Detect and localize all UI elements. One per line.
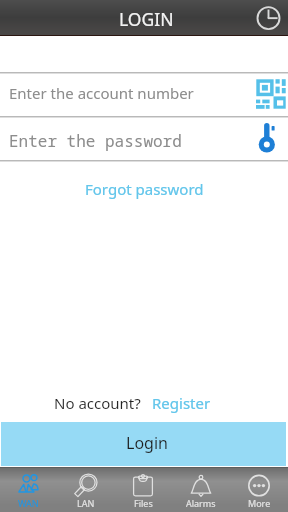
button[interactable]: WAN (0, 468, 57, 512)
button[interactable]: History (255, 4, 283, 32)
button[interactable]: Forgot password (75, 175, 214, 203)
staticText: Alarms (186, 497, 216, 509)
button[interactable]: Login (1, 422, 286, 466)
staticText: Login (126, 432, 168, 454)
staticText: Files (134, 497, 153, 509)
button[interactable]: LAN (57, 468, 114, 512)
staticText: Enter the password (9, 130, 182, 152)
button[interactable]: Enter the account number (0, 73, 288, 116)
button[interactable]: Show password (258, 122, 276, 152)
button[interactable]: Enter the password (0, 117, 288, 160)
button[interactable]: Files (114, 468, 172, 512)
staticText: More (248, 497, 271, 509)
staticText: No account? (54, 393, 141, 413)
button[interactable]: Register (152, 393, 211, 413)
staticText: WAN (18, 497, 39, 509)
staticText: Enter the account number (9, 83, 194, 103)
button[interactable]: More (230, 468, 288, 512)
button[interactable]: Scan QR code (256, 79, 286, 109)
staticText: LAN (77, 497, 95, 509)
button[interactable]: Alarms (172, 468, 230, 512)
staticText: LOGIN (119, 7, 174, 31)
